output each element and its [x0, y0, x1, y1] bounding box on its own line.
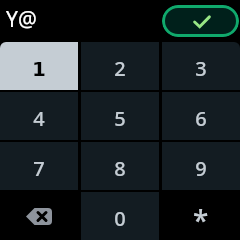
- button[interactable]: 9: [162, 142, 240, 190]
- button[interactable]: Confirm: [162, 5, 239, 37]
- staticText: 7: [33, 155, 45, 182]
- button[interactable]: 7: [0, 142, 78, 190]
- staticText: Y@: [6, 5, 37, 34]
- staticText: 2: [114, 55, 126, 82]
- staticText: 8: [114, 155, 126, 182]
- button[interactable]: 4: [0, 92, 78, 140]
- staticText: 0: [114, 205, 126, 232]
- staticText: *: [193, 201, 209, 239]
- button[interactable]: Backspace: [0, 192, 78, 240]
- staticText: 4: [33, 105, 45, 132]
- staticText: 6: [195, 105, 207, 132]
- button[interactable]: Asterisk: [162, 192, 240, 240]
- button[interactable]: 1: [0, 42, 78, 90]
- button[interactable]: 8: [81, 142, 159, 190]
- button[interactable]: 6: [162, 92, 240, 140]
- staticText: 3: [195, 55, 207, 82]
- button[interactable]: 0: [81, 192, 159, 240]
- button[interactable]: 3: [162, 42, 240, 90]
- staticText: 5: [114, 105, 126, 132]
- staticText: 9: [195, 155, 207, 182]
- button[interactable]: 5: [81, 92, 159, 140]
- button[interactable]: 2: [81, 42, 159, 90]
- staticText: 1: [32, 57, 46, 80]
